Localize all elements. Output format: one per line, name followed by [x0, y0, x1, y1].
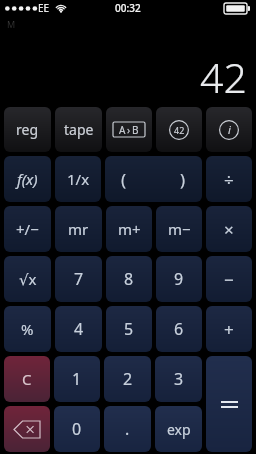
button[interactable]: Multiply	[206, 206, 252, 252]
button[interactable]: Answer 42	[156, 107, 202, 152]
button[interactable]: Divide	[206, 156, 252, 202]
staticText: mr	[68, 219, 89, 239]
staticText: 00:32	[115, 1, 141, 15]
staticText: 9	[174, 268, 184, 290]
button[interactable]: Clear	[4, 356, 50, 402]
button[interactable]: 8	[106, 256, 152, 302]
staticText: %	[21, 319, 34, 339]
staticText: .	[125, 418, 130, 440]
button[interactable]: m+	[106, 206, 152, 252]
button[interactable]: Square root	[4, 256, 51, 302]
staticText: )	[180, 168, 186, 191]
staticText: exp	[167, 420, 191, 439]
staticText: 1	[72, 368, 82, 390]
staticText: (	[121, 168, 127, 191]
staticText: reg	[16, 120, 39, 139]
staticText: −	[224, 268, 234, 291]
staticText: tape	[64, 120, 94, 139]
button[interactable]: 1/x	[55, 156, 101, 202]
button[interactable]: 9	[156, 256, 202, 302]
staticText: C	[22, 369, 32, 389]
staticText: ÷	[224, 168, 234, 191]
staticText: 4	[74, 318, 84, 340]
button[interactable]: f(x)	[4, 156, 51, 202]
staticText: f(x)	[17, 169, 38, 189]
staticText: m+	[118, 219, 141, 239]
button[interactable]: A to B conversion	[106, 107, 152, 152]
button[interactable]: Percent	[4, 306, 51, 352]
button[interactable]: Backspace	[4, 406, 50, 452]
staticText: 0	[72, 418, 82, 440]
button[interactable]: Parentheses	[105, 156, 202, 202]
button[interactable]: Minus	[206, 256, 252, 302]
button[interactable]: 0	[54, 406, 100, 452]
button[interactable]: 3	[155, 356, 202, 402]
button[interactable]: Info	[206, 107, 252, 152]
button[interactable]: 7	[55, 256, 102, 302]
button[interactable]: 5	[106, 306, 152, 352]
staticText: 7	[74, 268, 84, 290]
staticText: A	[119, 123, 126, 137]
staticText: +	[224, 318, 234, 341]
staticText: M	[7, 18, 16, 30]
button[interactable]: 2	[104, 356, 151, 402]
button[interactable]: 1	[54, 356, 100, 402]
button[interactable]: Plus	[206, 306, 252, 352]
staticText: ›	[127, 123, 131, 137]
button[interactable]: Equals	[206, 356, 252, 452]
button[interactable]: reg	[4, 107, 51, 152]
staticText: 6	[174, 318, 184, 340]
staticText: ×	[224, 218, 234, 241]
staticText: m−	[168, 219, 191, 239]
button[interactable]: Plus minus	[4, 206, 51, 252]
staticText: 5	[124, 318, 134, 340]
staticText: 42	[174, 124, 185, 136]
staticText: 2	[123, 368, 133, 390]
button[interactable]: mr	[55, 206, 102, 252]
staticText: 1/x	[67, 169, 90, 189]
button[interactable]: tape	[55, 107, 102, 152]
button[interactable]: exp	[155, 406, 202, 452]
button[interactable]: Decimal point	[104, 406, 151, 452]
staticText: EE	[38, 1, 50, 15]
staticText: 8	[124, 268, 134, 290]
staticText: B	[132, 123, 139, 137]
button[interactable]: 6	[156, 306, 202, 352]
staticText: 42	[200, 49, 247, 105]
staticText: +/−	[16, 219, 39, 239]
button[interactable]: 4	[55, 306, 102, 352]
button[interactable]: m−	[156, 206, 202, 252]
staticText: i	[228, 122, 231, 137]
staticText: √x	[19, 269, 37, 289]
staticText: 3	[174, 368, 184, 390]
